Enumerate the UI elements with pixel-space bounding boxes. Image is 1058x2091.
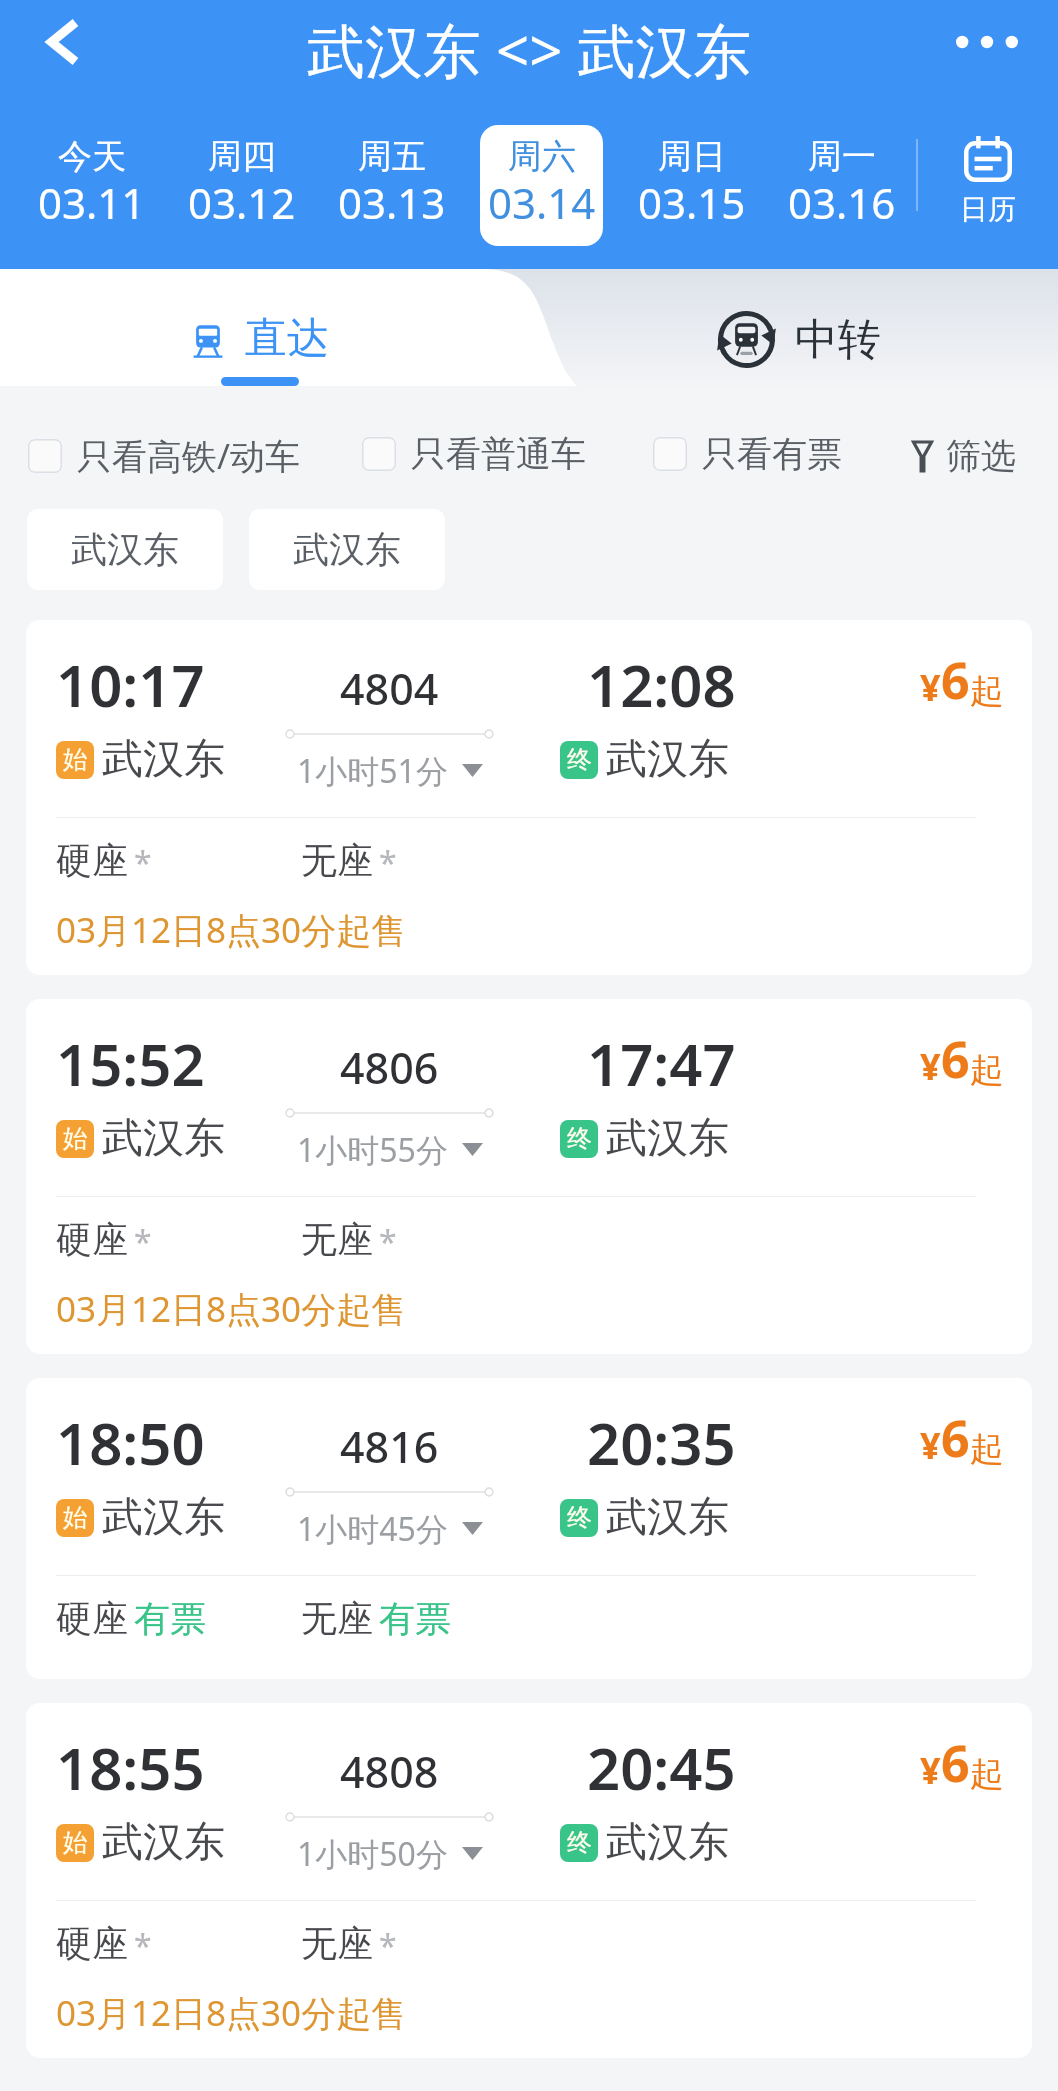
button[interactable]: 15:52 (26, 999, 1032, 1354)
staticText: * (379, 1924, 397, 1964)
staticText: 武汉东 (102, 1113, 225, 1165)
staticText: 起 (970, 1428, 1004, 1471)
staticText: 终 (567, 1123, 592, 1154)
button[interactable]: 今天 (30, 125, 153, 246)
staticText: 12:08 (587, 645, 736, 724)
button[interactable]: 只看有票 (643, 424, 852, 484)
button[interactable]: 周五 (330, 125, 453, 246)
button[interactable]: 日历 (918, 103, 1058, 269)
staticText: * (134, 1220, 152, 1260)
button[interactable]: 18:50 (26, 1378, 1032, 1679)
staticText: 硬座 (56, 838, 128, 878)
staticText: 武汉东 (606, 734, 729, 786)
staticText: 6 (941, 1729, 970, 1797)
staticText: 1小时51分 (297, 749, 448, 790)
staticText: 武汉东 (293, 527, 401, 572)
staticText: 始 (63, 744, 88, 775)
staticText: 15:52 (56, 1024, 205, 1103)
button[interactable]: 更多 (933, 6, 1041, 78)
staticText: 无座 (301, 1217, 373, 1257)
staticText: 4804 (340, 659, 439, 718)
button[interactable]: 只看高铁/动车 (18, 424, 311, 488)
button[interactable]: 10:17 (26, 620, 1032, 975)
staticText: 4816 (340, 1417, 439, 1476)
staticText: 始 (63, 1827, 88, 1858)
staticText: 武汉东 <> 武汉东 (307, 10, 752, 89)
staticText: 无座 (301, 838, 373, 878)
staticText: 只看高铁/动车 (77, 432, 301, 480)
staticText: ¥ (920, 1421, 941, 1470)
staticText: 18:55 (56, 1728, 205, 1807)
staticText: 03月12日8点30分起售 (56, 1989, 407, 2037)
button[interactable]: 返回 (22, 6, 110, 84)
button[interactable]: 只看普通车 (352, 424, 596, 484)
staticText: 03.15 (638, 174, 746, 231)
staticText: 03.12 (188, 174, 296, 231)
button[interactable]: 武汉东 (27, 509, 223, 590)
staticText: 20:35 (587, 1403, 736, 1482)
button[interactable]: 18:55 (26, 1703, 1032, 2058)
staticText: ¥ (920, 1042, 941, 1091)
staticText: 03.13 (338, 174, 446, 231)
button[interactable]: 周四 (180, 125, 303, 246)
staticText: 周五 (358, 135, 426, 178)
staticText: 硬座 (56, 1921, 128, 1961)
staticText: 周一 (808, 135, 876, 178)
staticText: 有票 (134, 1596, 206, 1636)
staticText: 18:50 (56, 1403, 205, 1482)
staticText: 1小时55分 (297, 1128, 448, 1169)
staticText: 1小时45分 (297, 1507, 448, 1548)
staticText: 4808 (340, 1742, 439, 1801)
button[interactable]: 直达 (0, 269, 529, 386)
staticText: 始 (63, 1123, 88, 1154)
button[interactable]: 中转 (529, 269, 1058, 386)
staticText: 硬座 (56, 1217, 128, 1257)
staticText: 03.14 (488, 174, 596, 231)
staticText: 终 (567, 744, 592, 775)
button[interactable]: 周日 (630, 125, 753, 246)
staticText: 10:17 (56, 645, 205, 724)
staticText: * (379, 841, 397, 881)
staticText: ¥ (920, 1746, 941, 1795)
staticText: 硬座 (56, 1596, 128, 1636)
staticText: 终 (567, 1502, 592, 1533)
staticText: 只看普通车 (411, 432, 586, 476)
staticText: 起 (970, 1049, 1004, 1092)
staticText: 直达 (245, 312, 329, 365)
staticText: * (379, 1220, 397, 1260)
staticText: 6 (941, 646, 970, 714)
staticText: 武汉东 (71, 527, 179, 572)
staticText: 中转 (795, 313, 881, 367)
button[interactable]: 筛选 (900, 426, 1028, 486)
staticText: 有票 (379, 1596, 451, 1636)
staticText: 武汉东 (606, 1113, 729, 1165)
staticText: 03.11 (38, 174, 146, 231)
staticText: 6 (941, 1404, 970, 1472)
staticText: 武汉东 (102, 1817, 225, 1869)
staticText: 周日 (658, 135, 726, 178)
staticText: 周四 (208, 135, 276, 178)
staticText: 20:45 (587, 1728, 736, 1807)
staticText: 17:47 (587, 1024, 736, 1103)
staticText: 武汉东 (102, 734, 225, 786)
staticText: 始 (63, 1502, 88, 1533)
staticText: 今天 (58, 135, 126, 178)
staticText: 终 (567, 1827, 592, 1858)
staticText: 6 (941, 1025, 970, 1093)
staticText: 周六 (508, 135, 576, 178)
staticText: 武汉东 (606, 1492, 729, 1544)
staticText: 1小时50分 (297, 1832, 448, 1873)
staticText: 无座 (301, 1596, 373, 1636)
staticText: * (134, 841, 152, 881)
button[interactable]: 周六 (480, 125, 603, 246)
staticText: * (134, 1924, 152, 1964)
staticText: 03.16 (788, 174, 896, 231)
staticText: ¥ (920, 663, 941, 712)
button[interactable]: 周一 (780, 125, 903, 246)
staticText: 起 (970, 1753, 1004, 1796)
staticText: 起 (970, 670, 1004, 713)
staticText: 日历 (960, 192, 1016, 227)
staticText: 03月12日8点30分起售 (56, 906, 407, 954)
button[interactable]: 武汉东 (249, 509, 445, 590)
staticText: 只看有票 (702, 432, 842, 476)
